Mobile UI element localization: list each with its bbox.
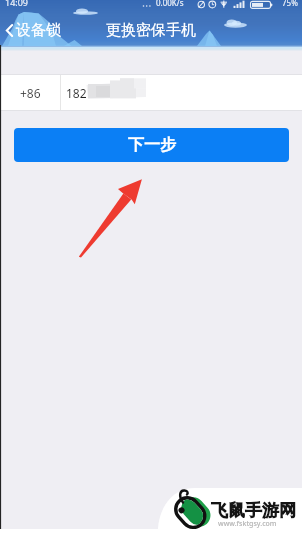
staticText: 14:09 (5, 0, 29, 7)
staticText: 更换密保手机 (106, 21, 196, 40)
staticText: 设备锁 (16, 21, 61, 40)
staticText: +86 (20, 85, 41, 101)
staticText: 75% (282, 0, 298, 8)
button[interactable]: 下一步 (14, 128, 289, 162)
staticText: www.fsktgsy.com (218, 519, 277, 529)
staticText: 下一步 (128, 135, 176, 155)
staticText: 飞鼠手游网 (211, 500, 296, 521)
staticText: 0.00K/s (156, 0, 184, 8)
staticText: 182 (66, 85, 87, 101)
button[interactable]: 返回 设备锁 (0, 21, 66, 40)
